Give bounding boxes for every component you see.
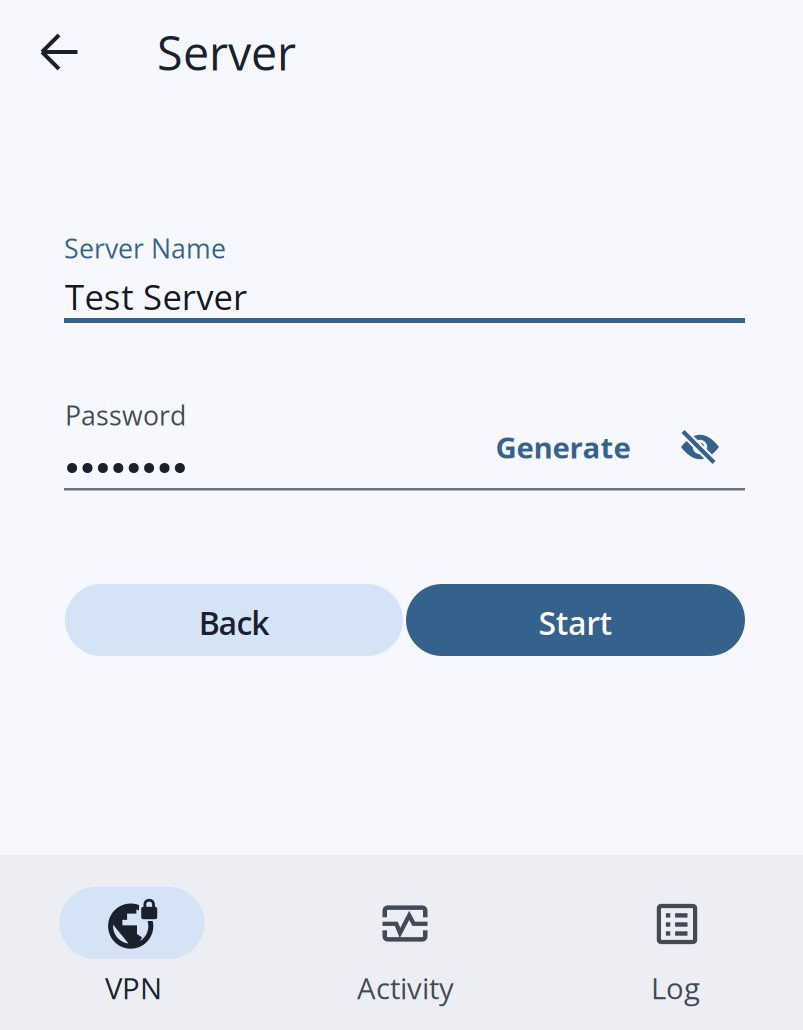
staticText: Server Name [64,230,226,266]
button[interactable]: Generate [488,424,638,470]
button[interactable]: Back [23,16,95,88]
staticText: Server [157,20,296,84]
button[interactable]: Start [406,584,745,656]
staticText: Activity [357,968,454,1008]
staticText: Password [65,397,186,433]
staticText: Start [539,601,612,644]
button[interactable]: Log [551,855,803,1030]
staticText: Log [651,968,700,1008]
staticText: Back [199,601,269,644]
button[interactable]: Show password [669,416,731,478]
button[interactable]: Activity [265,855,545,1030]
staticText: Test Server [65,273,247,320]
button[interactable]: Back [65,584,403,656]
staticText: Generate [495,427,630,467]
button[interactable]: VPN [0,855,264,1030]
staticText: VPN [105,968,162,1008]
